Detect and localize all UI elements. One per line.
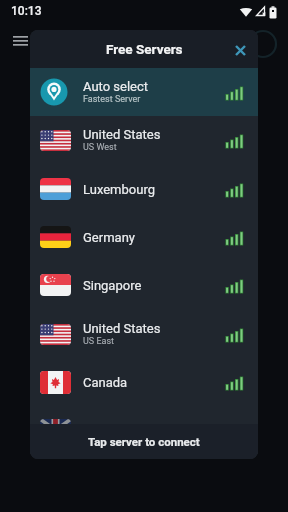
- staticText: Fastest Server: [83, 94, 141, 105]
- button[interactable]: [235, 45, 246, 56]
- staticText: Free Servers: [106, 41, 183, 57]
- staticText: Luxembourg: [83, 182, 155, 197]
- button[interactable]: United States: [30, 116, 258, 164]
- button[interactable]: Auto select: [30, 68, 258, 116]
- staticText: Tap server to connect: [88, 435, 200, 448]
- staticText: 10:13: [11, 4, 42, 18]
- button[interactable]: Singapore: [30, 261, 258, 309]
- button[interactable]: United States: [30, 310, 258, 358]
- staticText: Germany: [83, 230, 135, 245]
- staticText: Singapore: [83, 278, 142, 293]
- staticText: US East: [83, 336, 115, 347]
- button[interactable]: Germany: [30, 213, 258, 261]
- staticText: United States: [83, 127, 161, 142]
- button[interactable]: United Kingdom: [30, 406, 258, 454]
- button[interactable]: Canada: [30, 358, 258, 406]
- staticText: US West: [83, 142, 117, 153]
- staticText: United States: [83, 321, 161, 336]
- staticText: Auto select: [83, 79, 149, 94]
- button[interactable]: Luxembourg: [30, 165, 258, 213]
- staticText: Canada: [83, 375, 128, 390]
- button[interactable]: Tap server to connect: [30, 424, 258, 459]
